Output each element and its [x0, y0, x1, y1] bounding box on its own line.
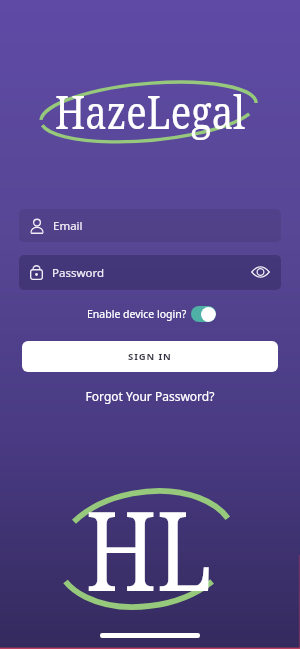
staticText: Email [53, 218, 83, 234]
staticText: SIGN IN [128, 350, 172, 363]
staticText: Enable device login? [87, 307, 187, 321]
staticText: HazeLegal [22, 81, 277, 142]
staticText: Password [52, 265, 105, 281]
button[interactable]: Password [19, 255, 281, 290]
button[interactable]: Email [19, 209, 281, 242]
button[interactable] [191, 306, 216, 322]
staticText: HL [27, 473, 271, 623]
button[interactable]: Forgot Your Password? [0, 388, 300, 404]
button[interactable]: SIGN IN [22, 341, 278, 372]
